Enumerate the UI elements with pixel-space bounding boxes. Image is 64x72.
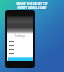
button[interactable] (7, 51, 33, 55)
staticText: EVERY SINGLE DAY (17, 6, 47, 10)
button[interactable] (7, 39, 33, 43)
button[interactable] (8, 57, 33, 61)
staticText: Settings (7, 34, 33, 38)
button[interactable] (7, 43, 33, 47)
staticText: MAKE THE MOST OF (16, 2, 48, 6)
button[interactable] (7, 47, 33, 51)
button[interactable] (7, 55, 33, 59)
